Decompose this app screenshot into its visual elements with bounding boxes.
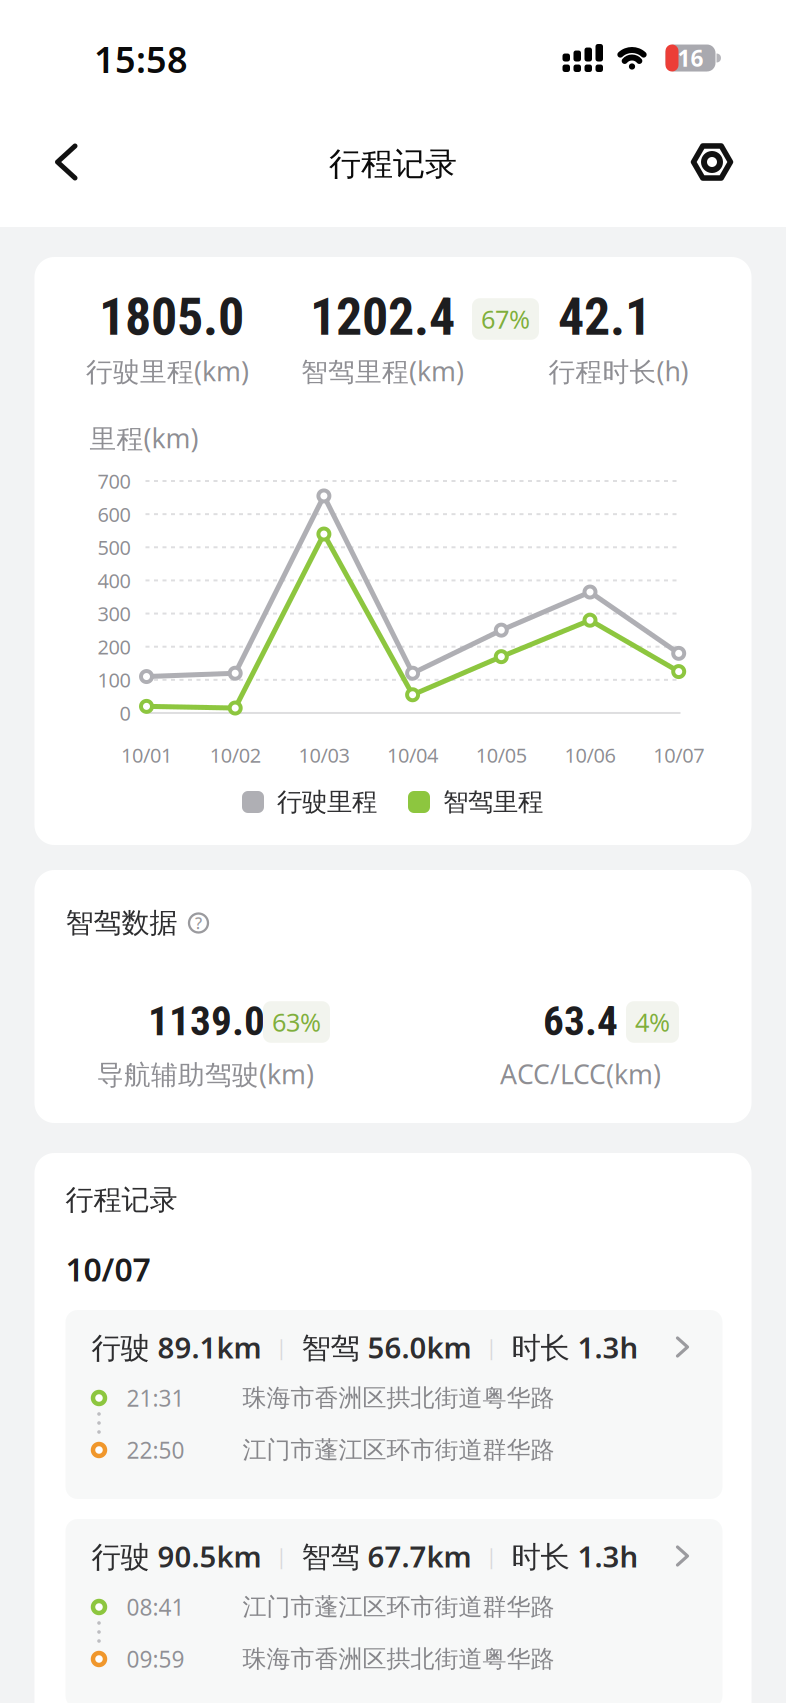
- staticText: 行驶 89.1km: [91, 1327, 261, 1366]
- staticText: 100: [97, 667, 130, 693]
- staticText: |: [485, 1333, 497, 1361]
- staticText: 行驶 90.5km: [91, 1536, 261, 1575]
- staticText: 22:50: [126, 1435, 184, 1465]
- staticText: 10/03: [298, 742, 349, 768]
- staticText: 08:41: [126, 1592, 184, 1622]
- staticText: 500: [97, 534, 130, 561]
- staticText: 智驾里程(km): [301, 353, 464, 389]
- staticText: 里程(km): [89, 420, 198, 456]
- button[interactable]: 行驶 89.1km: [65, 1310, 722, 1499]
- staticText: 行程记录: [65, 1183, 177, 1217]
- staticText: 10/01: [121, 742, 172, 768]
- staticText: 10/04: [387, 742, 438, 768]
- staticText: 10/07: [65, 1248, 150, 1290]
- staticText: |: [275, 1542, 287, 1570]
- staticText: 63.4: [543, 997, 618, 1045]
- staticText: 智驾数据: [65, 906, 177, 940]
- button[interactable]: Settings: [675, 125, 749, 199]
- staticText: 400: [97, 567, 130, 594]
- staticText: 10/06: [564, 742, 615, 768]
- button[interactable]: Back: [29, 124, 103, 199]
- staticText: 行驶里程(km): [86, 353, 249, 389]
- staticText: 10/05: [476, 742, 527, 768]
- staticText: 09:59: [126, 1644, 184, 1674]
- staticText: 15:58: [94, 35, 188, 83]
- staticText: |: [275, 1333, 287, 1361]
- staticText: 67%: [481, 302, 530, 336]
- staticText: 时长 1.3h: [511, 1327, 638, 1366]
- staticText: 江门市蓬江区环市街道群华路: [242, 1592, 554, 1622]
- staticText: 10/07: [653, 742, 704, 768]
- staticText: 江门市蓬江区环市街道群华路: [242, 1435, 554, 1465]
- button[interactable]: Help: [187, 912, 209, 934]
- staticText: 600: [97, 501, 130, 527]
- staticText: ?: [195, 912, 202, 934]
- staticText: 1139.0: [148, 997, 265, 1045]
- staticText: 700: [97, 468, 130, 494]
- staticText: 智驾 56.0km: [301, 1327, 471, 1366]
- staticText: 16: [677, 43, 703, 73]
- staticText: 珠海市香洲区拱北街道粤华路: [242, 1644, 554, 1674]
- staticText: 10/02: [210, 742, 261, 768]
- staticText: 200: [97, 633, 130, 660]
- staticText: 行程记录: [329, 144, 457, 184]
- staticText: 0: [119, 700, 130, 726]
- button[interactable]: 行驶 90.5km: [65, 1519, 722, 1703]
- staticText: 63%: [272, 1005, 321, 1039]
- staticText: 1805.0: [99, 286, 244, 347]
- staticText: 行驶里程: [277, 786, 377, 817]
- staticText: 导航辅助驾驶(km): [97, 1056, 314, 1092]
- staticText: |: [485, 1542, 497, 1570]
- staticText: 智驾 67.7km: [301, 1536, 471, 1575]
- staticText: 行程时长(h): [548, 353, 688, 389]
- staticText: 21:31: [126, 1383, 184, 1413]
- staticText: 4%: [635, 1005, 670, 1039]
- staticText: 300: [97, 600, 130, 627]
- staticText: 42.1: [558, 286, 651, 347]
- staticText: 智驾里程: [443, 786, 543, 817]
- staticText: 1202.4: [310, 286, 455, 347]
- staticText: ACC/LCC(km): [500, 1056, 661, 1092]
- staticText: 珠海市香洲区拱北街道粤华路: [242, 1383, 554, 1413]
- staticText: 时长 1.3h: [511, 1536, 638, 1575]
